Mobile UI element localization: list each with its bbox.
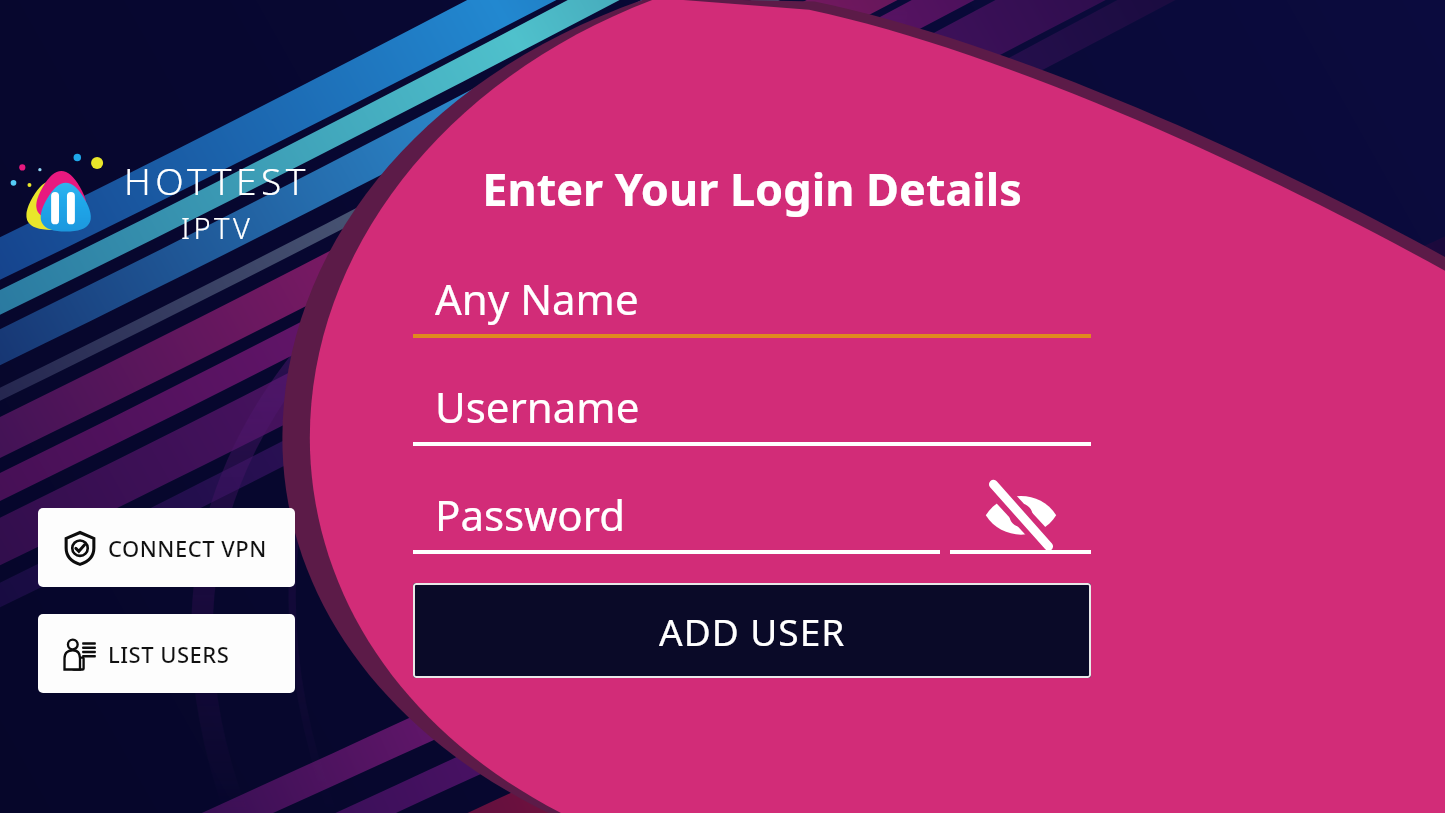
button[interactable]: CONNECT VPN — [38, 508, 295, 587]
staticText: Enter Your Login Details — [482, 158, 1022, 219]
button[interactable]: LIST USERS — [38, 614, 295, 693]
button[interactable]: Any Name — [413, 262, 1091, 338]
staticText: Username — [435, 378, 640, 435]
button[interactable]: Password — [413, 478, 940, 554]
button[interactable]: Toggle password visibility — [950, 478, 1091, 554]
staticText: ADD USER — [659, 606, 846, 656]
staticText: LIST USERS — [108, 639, 230, 669]
button[interactable]: Username — [413, 370, 1091, 446]
staticText: Any Name — [435, 270, 639, 327]
staticText: HOTTEST — [124, 155, 310, 205]
staticText: Password — [435, 486, 625, 543]
staticText: IPTV — [181, 208, 254, 247]
staticText: CONNECT VPN — [108, 533, 267, 563]
button[interactable]: ADD USER — [413, 583, 1091, 678]
